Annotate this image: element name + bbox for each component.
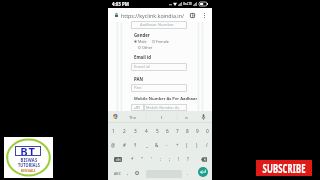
staticText: _ — [146, 142, 148, 148]
staticText: ? — [187, 156, 189, 162]
staticText: I — [161, 115, 163, 121]
staticText: BISWAS — [21, 158, 37, 163]
button[interactable]: @ — [108, 138, 119, 152]
staticText: ; — [169, 156, 171, 162]
staticText: Email id — [134, 54, 151, 60]
staticText: =\< — [116, 158, 121, 162]
button[interactable]: Backspace — [192, 152, 212, 166]
button[interactable]: Google search — [113, 114, 118, 119]
staticText: - — [166, 142, 168, 148]
staticText: ( — [186, 142, 188, 148]
button[interactable]: 3 — [130, 123, 141, 138]
button[interactable]: ABC — [111, 166, 124, 180]
staticText: ABC — [114, 171, 121, 176]
staticText: ! — [178, 156, 180, 162]
staticText: + — [176, 142, 179, 148]
button[interactable]: & — [152, 138, 162, 152]
staticText: 6 — [166, 128, 169, 134]
button[interactable]: / — [202, 138, 212, 152]
staticText: ) — [196, 142, 198, 148]
staticText: / — [206, 142, 208, 148]
staticText: " — [141, 156, 143, 162]
button[interactable]: 5 — [152, 123, 162, 138]
button[interactable]: 6 — [162, 123, 172, 138]
staticText: 2 — [123, 128, 126, 134]
staticText: BT — [20, 143, 36, 158]
button[interactable]: Symbols — [108, 152, 127, 166]
staticText: 3 — [134, 128, 137, 134]
button[interactable]: Voice input — [202, 114, 205, 120]
button[interactable]: ; — [165, 152, 174, 166]
staticText: The — [129, 115, 137, 121]
staticText: ₹ — [134, 142, 137, 148]
staticText: Aadhaar Number — [140, 22, 175, 28]
staticText: 4 — [145, 128, 148, 134]
button[interactable]: , — [123, 166, 132, 180]
staticText: is — [185, 115, 189, 121]
staticText: Pan — [134, 85, 142, 91]
button[interactable]: * — [127, 152, 137, 166]
staticText: PAN — [134, 76, 143, 82]
button[interactable]: 7 — [172, 123, 182, 138]
staticText: ' — [151, 156, 153, 162]
button[interactable]: ' — [147, 152, 156, 166]
button[interactable]: ! — [174, 152, 183, 166]
button[interactable]: 1 — [108, 123, 119, 138]
button[interactable]: : — [156, 152, 165, 166]
staticText: 7 — [176, 128, 179, 134]
staticText: # — [123, 142, 126, 148]
staticText: * — [131, 156, 134, 162]
button[interactable]: _ — [141, 138, 152, 152]
staticText: 0 — [206, 128, 209, 134]
button[interactable]: " — [137, 152, 147, 166]
button[interactable]: - — [162, 138, 172, 152]
button[interactable]: ₹ — [130, 138, 141, 152]
staticText: @ — [111, 142, 116, 148]
staticText: https://kyclink.koindia.in/ — [121, 12, 184, 19]
button[interactable]: # — [119, 138, 130, 152]
staticText: & — [155, 142, 159, 148]
button[interactable]: ( — [182, 138, 192, 152]
button[interactable]: 4 — [141, 123, 152, 138]
button[interactable]: Emoji — [132, 166, 142, 180]
button[interactable]: 2 — [119, 123, 130, 138]
button[interactable]: SUBSCRIBE — [256, 160, 312, 176]
button[interactable]: Tabs — [190, 13, 195, 18]
button[interactable]: 9 — [192, 123, 202, 138]
staticText: Mobile Number As Per Aadhaar — [134, 96, 198, 102]
button[interactable]: 0 — [202, 123, 212, 138]
staticText: Male — [138, 39, 147, 44]
button[interactable]: More options — [204, 13, 205, 18]
staticText: : — [160, 156, 162, 162]
staticText: , — [127, 170, 129, 176]
staticText: Email id — [134, 64, 150, 70]
staticText: 5 — [156, 128, 159, 134]
staticText: Gender — [134, 32, 150, 38]
staticText: Other — [142, 45, 153, 50]
button[interactable]: ) — [192, 138, 202, 152]
staticText: 1 — [112, 128, 115, 134]
staticText: VoLTE — [183, 2, 192, 6]
button[interactable]: Enter — [194, 166, 211, 180]
button[interactable]: + — [172, 138, 182, 152]
staticText: SUBSCRIBE — [263, 159, 306, 177]
staticText: Mobile Number As — [146, 105, 180, 110]
button[interactable]: ? — [183, 152, 192, 166]
staticText: 9 — [196, 128, 199, 134]
button[interactable]: 8 — [182, 123, 192, 138]
staticText: . — [187, 170, 189, 176]
staticText: +91 — [134, 105, 141, 110]
button[interactable]: . — [183, 166, 192, 180]
staticText: 8 — [186, 128, 189, 134]
staticText: BENGALI — [21, 169, 36, 173]
staticText: TUTORIALS — [18, 163, 40, 168]
staticText: 4:03 PM — [112, 1, 129, 7]
staticText: Female — [156, 39, 169, 44]
